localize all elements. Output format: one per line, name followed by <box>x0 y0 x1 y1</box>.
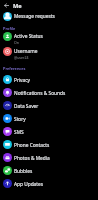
button[interactable]: Privacy <box>0 73 98 86</box>
button[interactable]: Data Saver <box>0 99 98 112</box>
staticText: Profile <box>3 26 16 31</box>
button[interactable]: Bubbles <box>0 164 98 177</box>
staticText: Me <box>13 2 22 10</box>
staticText: Preferences <box>3 66 26 71</box>
staticText: On <box>14 40 19 45</box>
staticText: Username <box>14 48 38 55</box>
staticText: @user24 <box>14 55 29 60</box>
button[interactable]: Photos & Media <box>0 151 98 164</box>
staticText: SMS <box>14 129 24 136</box>
staticText: Active Status <box>14 33 43 40</box>
button[interactable]: Back <box>1 0 12 11</box>
staticText: App Updates <box>14 181 44 188</box>
staticText: Notifications & Sounds <box>14 90 66 97</box>
staticText: Phone Contacts <box>14 142 50 149</box>
button[interactable]: Active Status <box>0 29 98 44</box>
staticText: Photos & Media <box>14 155 50 162</box>
button[interactable]: App Updates <box>0 177 98 190</box>
button[interactable]: Phone Contacts <box>0 138 98 151</box>
staticText: Message requests <box>14 13 55 20</box>
button[interactable]: Message requests <box>0 11 98 21</box>
button[interactable]: Username <box>0 44 98 59</box>
button[interactable]: Notifications & Sounds <box>0 86 98 99</box>
staticText: Bubbles <box>14 168 33 175</box>
button[interactable]: SMS <box>0 125 98 138</box>
button[interactable]: Story <box>0 112 98 125</box>
staticText: Data Saver <box>14 103 39 110</box>
staticText: Privacy <box>14 77 30 84</box>
staticText: Story <box>14 116 26 123</box>
